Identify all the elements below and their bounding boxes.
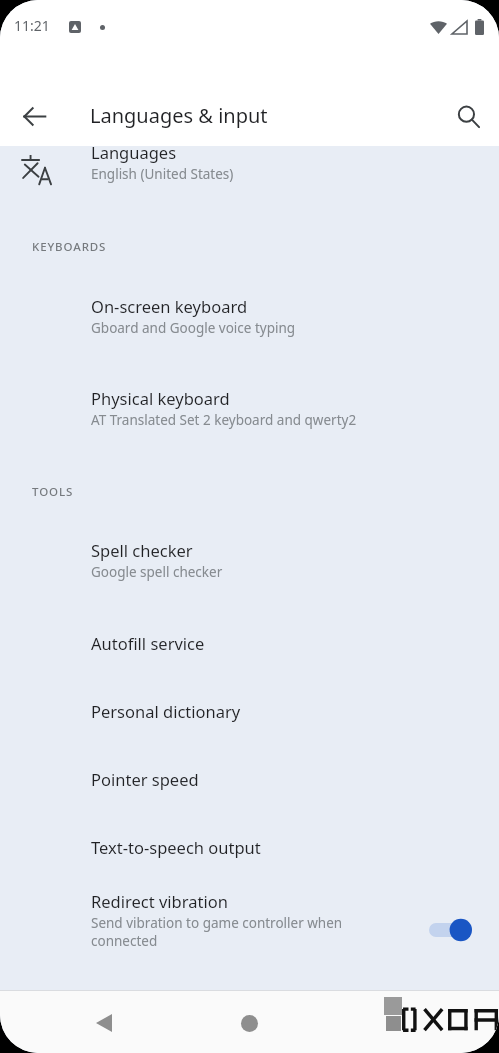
staticText: Gboard and Google voice typing <box>91 319 296 337</box>
staticText: Languages & input <box>90 102 268 129</box>
staticText: Spell checker <box>91 539 193 561</box>
staticText: English (United States) <box>91 165 234 183</box>
button[interactable]: Recent apps <box>369 999 417 1047</box>
staticText: Languages <box>91 141 177 163</box>
staticText: On-screen keyboard <box>91 295 248 317</box>
button[interactable]: Spell checker <box>0 535 499 595</box>
button[interactable]: Text-to-speech output <box>0 832 499 882</box>
button[interactable]: Back <box>80 999 128 1047</box>
staticText: Autofill service <box>91 632 205 654</box>
staticText: Personal dictionary <box>91 700 241 722</box>
staticText: Google spell checker <box>91 563 223 581</box>
button[interactable]: Redirect vibration <box>0 890 499 986</box>
button[interactable]: Back <box>10 92 58 140</box>
staticText: Pointer speed <box>91 768 199 790</box>
staticText: Send vibration to game controller when c… <box>91 914 371 950</box>
button[interactable]: Personal dictionary <box>0 696 499 746</box>
staticText: AT Translated Set 2 keyboard and qwerty2 <box>91 411 357 429</box>
staticText: Redirect vibration <box>91 890 228 912</box>
button[interactable]: Redirect vibration toggle <box>429 916 473 944</box>
staticText: 11:21 <box>14 16 50 35</box>
button[interactable]: Physical keyboard <box>0 383 499 443</box>
button[interactable]: Search <box>444 92 492 140</box>
button[interactable]: Home <box>225 999 273 1047</box>
staticText: Text-to-speech output <box>91 836 261 858</box>
button[interactable]: Languages <box>0 146 499 200</box>
button[interactable]: Autofill service <box>0 628 499 678</box>
staticText: TOOLS <box>32 484 74 500</box>
button[interactable]: Pointer speed <box>0 764 499 814</box>
staticText: KEYBOARDS <box>32 239 107 255</box>
staticText: Physical keyboard <box>91 387 230 409</box>
button[interactable]: On-screen keyboard <box>0 291 499 351</box>
